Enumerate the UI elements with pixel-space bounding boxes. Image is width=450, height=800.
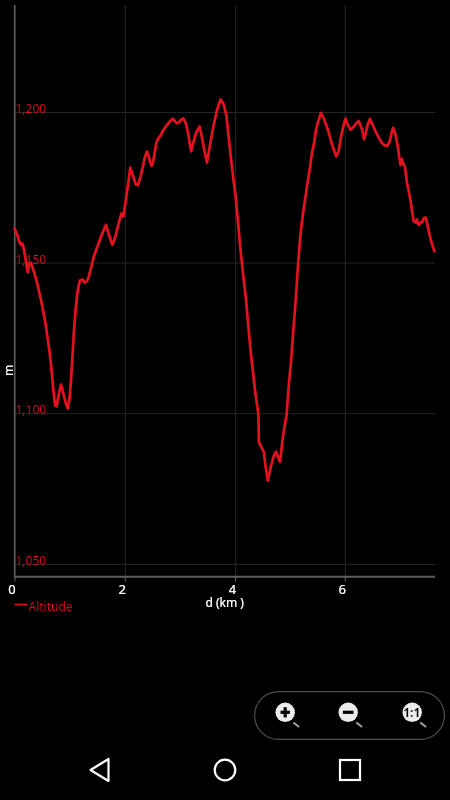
button[interactable]: Reset zoom [402, 698, 438, 734]
button[interactable]: Zoom out [338, 698, 374, 734]
button[interactable]: Zoom in [275, 698, 311, 734]
button[interactable]: Home [175, 742, 275, 800]
button[interactable]: Back [75, 742, 175, 800]
button[interactable]: Recent apps [300, 742, 400, 800]
